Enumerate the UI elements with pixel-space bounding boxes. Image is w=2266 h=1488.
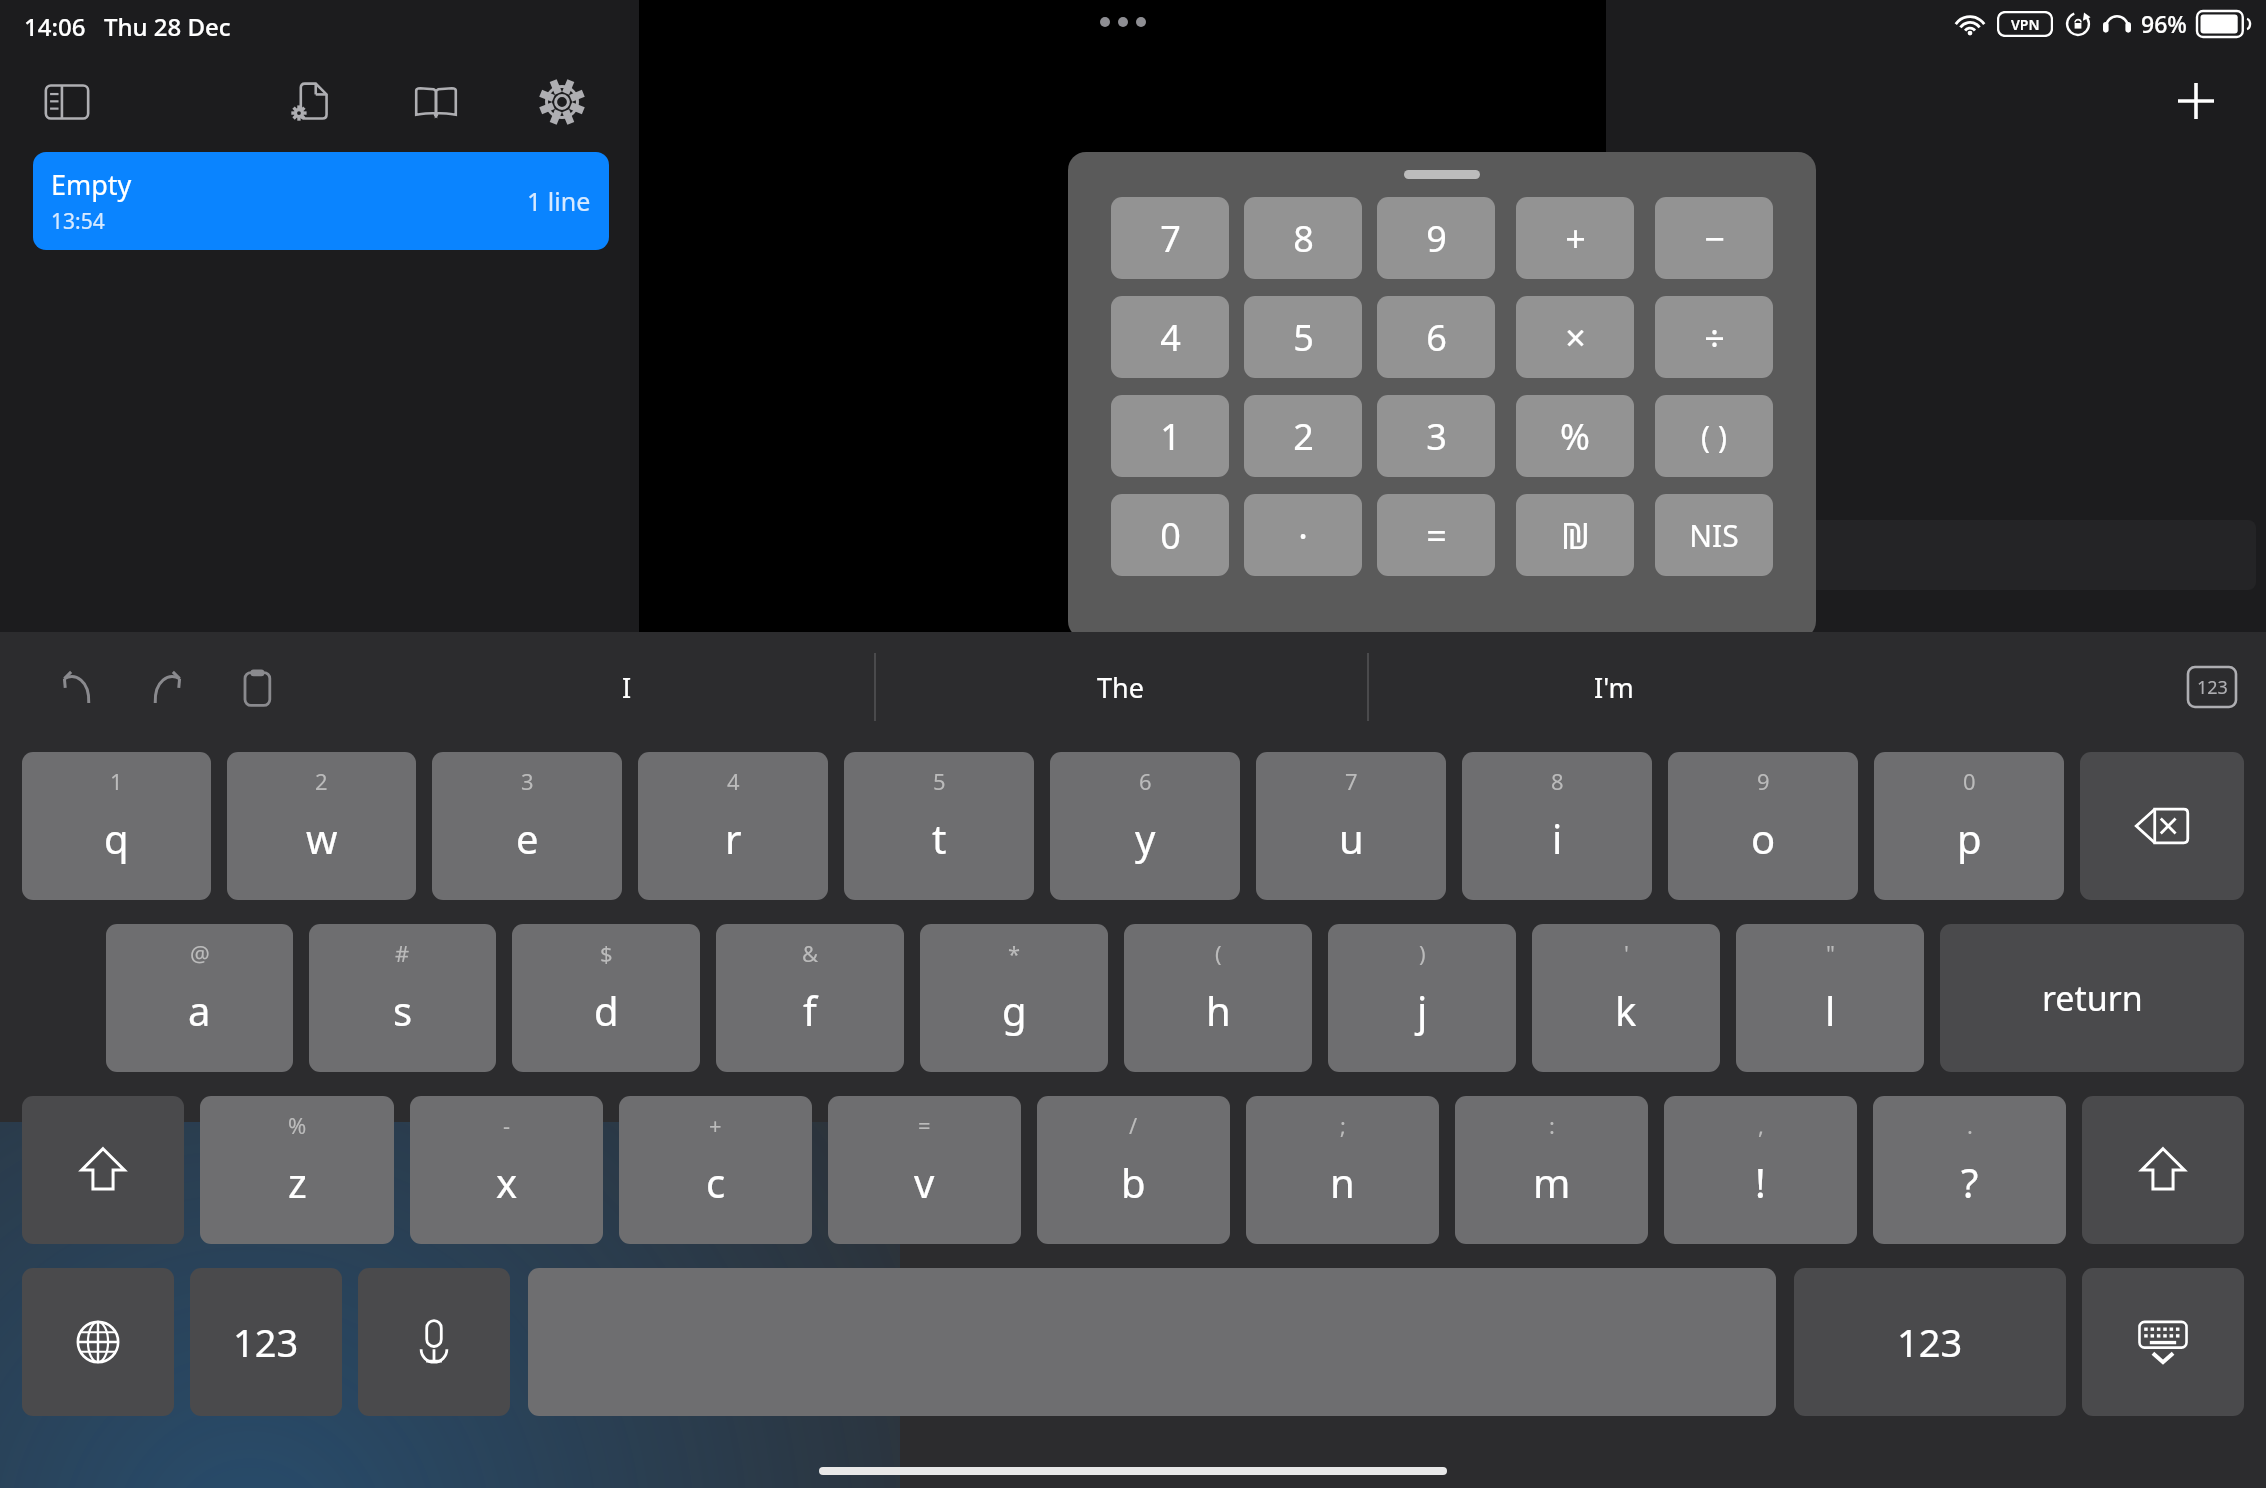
staticText: z bbox=[288, 1155, 307, 1209]
button[interactable]: Dictation bbox=[358, 1268, 510, 1416]
staticText: f bbox=[803, 983, 817, 1037]
button[interactable]: Shift bbox=[22, 1096, 184, 1244]
button[interactable]: New document bbox=[2165, 70, 2227, 132]
button[interactable]: 4 bbox=[1111, 296, 1229, 378]
button[interactable]: / bbox=[1037, 1096, 1230, 1244]
button[interactable]: 6 bbox=[1050, 752, 1240, 900]
button[interactable]: Shift bbox=[2082, 1096, 2244, 1244]
button[interactable]: ; bbox=[1246, 1096, 1439, 1244]
button[interactable]: 3 bbox=[432, 752, 622, 900]
button[interactable]: 123 bbox=[1794, 1268, 2066, 1416]
button[interactable]: ) bbox=[1328, 924, 1516, 1072]
button[interactable]: Settings bbox=[531, 71, 593, 133]
staticText: w bbox=[306, 811, 338, 865]
staticText: 8 bbox=[1551, 766, 1564, 796]
staticText: 7 bbox=[1345, 766, 1358, 796]
button[interactable]: ( ) bbox=[1655, 395, 1773, 477]
button[interactable]: Paste bbox=[224, 654, 290, 720]
button[interactable]: + bbox=[619, 1096, 812, 1244]
button[interactable]: @ bbox=[106, 924, 293, 1072]
staticText: 0 bbox=[1963, 766, 1976, 796]
staticText: − bbox=[1704, 214, 1725, 263]
staticText: 9 bbox=[1426, 214, 1447, 263]
staticText: o bbox=[1751, 811, 1776, 865]
button[interactable]: # bbox=[309, 924, 496, 1072]
staticText: / bbox=[1129, 1110, 1138, 1140]
button[interactable]: Toggle sidebar bbox=[36, 71, 98, 133]
button[interactable]: - bbox=[410, 1096, 603, 1244]
staticText: 1 bbox=[110, 766, 123, 796]
staticText: + bbox=[709, 1110, 722, 1140]
staticText: e bbox=[516, 811, 539, 865]
button[interactable]: , bbox=[1664, 1096, 1857, 1244]
button[interactable]: : bbox=[1455, 1096, 1648, 1244]
button[interactable]: Numbers bbox=[2188, 667, 2236, 707]
button[interactable]: = bbox=[1377, 494, 1495, 576]
button[interactable]: 5 bbox=[844, 752, 1034, 900]
button[interactable]: Backspace bbox=[2080, 752, 2244, 900]
button[interactable]: * bbox=[920, 924, 1108, 1072]
button[interactable]: 0 bbox=[1874, 752, 2064, 900]
button[interactable]: Next keyboard bbox=[22, 1268, 174, 1416]
button[interactable]: & bbox=[716, 924, 904, 1072]
staticText: 1 line bbox=[527, 184, 591, 218]
button[interactable]: $ bbox=[512, 924, 700, 1072]
staticText: ) bbox=[1419, 938, 1426, 968]
button[interactable]: − bbox=[1655, 197, 1773, 279]
button[interactable]: ÷ bbox=[1655, 296, 1773, 378]
button[interactable]: ( bbox=[1124, 924, 1312, 1072]
button[interactable]: = bbox=[828, 1096, 1021, 1244]
button[interactable]: 8 bbox=[1244, 197, 1362, 279]
button[interactable]: 1 bbox=[1111, 395, 1229, 477]
staticText: ; bbox=[1340, 1110, 1346, 1140]
staticText: % bbox=[1560, 412, 1590, 461]
button[interactable]: 9 bbox=[1377, 197, 1495, 279]
button[interactable]: 3 bbox=[1377, 395, 1495, 477]
button[interactable]: 2 bbox=[1244, 395, 1362, 477]
staticText: ( ) bbox=[1701, 416, 1727, 457]
button[interactable]: × bbox=[1516, 296, 1634, 378]
staticText: & bbox=[802, 938, 819, 968]
button[interactable]: NIS bbox=[1655, 494, 1773, 576]
button[interactable]: The bbox=[874, 632, 1367, 742]
button[interactable]: 2 bbox=[227, 752, 416, 900]
button[interactable]: % bbox=[200, 1096, 394, 1244]
button[interactable]: Empty bbox=[33, 152, 609, 250]
button[interactable]: 5 bbox=[1244, 296, 1362, 378]
staticText: 8 bbox=[1293, 214, 1314, 263]
button[interactable]: return bbox=[1940, 924, 2244, 1072]
button[interactable]: 1 bbox=[22, 752, 211, 900]
button[interactable]: Hide keyboard bbox=[2082, 1268, 2244, 1416]
button[interactable] bbox=[1616, 520, 2256, 590]
button[interactable]: 4 bbox=[638, 752, 828, 900]
button[interactable]: Undo bbox=[44, 654, 110, 720]
button[interactable]: I'm bbox=[1367, 632, 1860, 742]
staticText: 123 bbox=[1897, 1316, 1963, 1368]
staticText: 5 bbox=[933, 766, 946, 796]
button[interactable]: 8 bbox=[1462, 752, 1652, 900]
button[interactable]: 7 bbox=[1256, 752, 1446, 900]
button[interactable]: 6 bbox=[1377, 296, 1495, 378]
button[interactable]: · bbox=[1244, 494, 1362, 576]
staticText: a bbox=[188, 983, 211, 1037]
button[interactable]: 0 bbox=[1111, 494, 1229, 576]
button[interactable]: Document settings bbox=[279, 71, 341, 133]
button[interactable]: ₪ bbox=[1516, 494, 1634, 576]
button[interactable]: 9 bbox=[1668, 752, 1858, 900]
staticText: , bbox=[1758, 1110, 1764, 1140]
button[interactable]: " bbox=[1736, 924, 1924, 1072]
button[interactable]: . bbox=[1873, 1096, 2066, 1244]
button[interactable]: 123 bbox=[190, 1268, 342, 1416]
button[interactable]: % bbox=[1516, 395, 1634, 477]
staticText: 1 bbox=[1347, 172, 1360, 202]
button[interactable]: Library bbox=[405, 71, 467, 133]
button[interactable]: I bbox=[380, 632, 874, 742]
staticText: d bbox=[594, 983, 619, 1037]
staticText: 14:06 bbox=[24, 10, 86, 43]
button[interactable]: ' bbox=[1532, 924, 1720, 1072]
button[interactable]: 7 bbox=[1111, 197, 1229, 279]
button[interactable]: + bbox=[1516, 197, 1634, 279]
button[interactable]: Redo bbox=[134, 654, 200, 720]
staticText: The bbox=[1097, 669, 1144, 706]
